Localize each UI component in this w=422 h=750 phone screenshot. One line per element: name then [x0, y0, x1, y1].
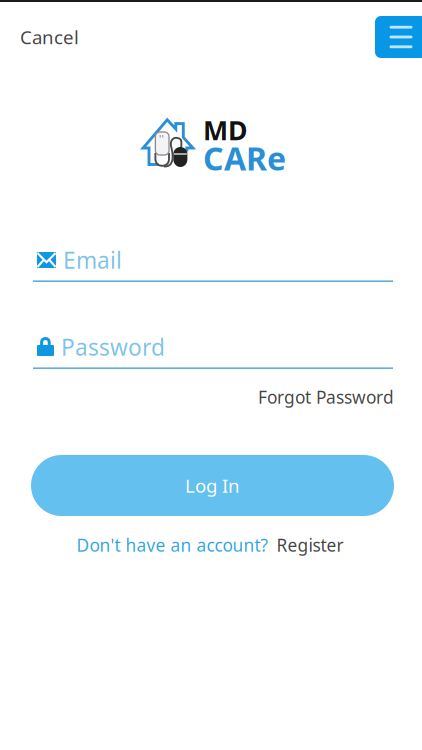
staticText: Log In: [185, 473, 240, 498]
button[interactable]: Forgot Password: [234, 387, 394, 407]
staticText: MD: [203, 112, 248, 148]
staticText: Forgot Password: [258, 385, 394, 408]
staticText: CARe: [203, 137, 286, 179]
staticText: Password: [61, 332, 165, 362]
button[interactable]: Password: [33, 336, 393, 369]
button[interactable]: Log In: [31, 455, 394, 516]
staticText: Email: [63, 245, 122, 275]
staticText: Don't have an account?: [76, 533, 268, 556]
button[interactable]: Menu: [375, 16, 422, 58]
button[interactable]: Cancel: [20, 21, 90, 53]
staticText: Register: [276, 533, 343, 556]
staticText: Cancel: [20, 25, 79, 49]
button[interactable]: Register: [276, 533, 343, 556]
button[interactable]: Email: [33, 249, 393, 282]
